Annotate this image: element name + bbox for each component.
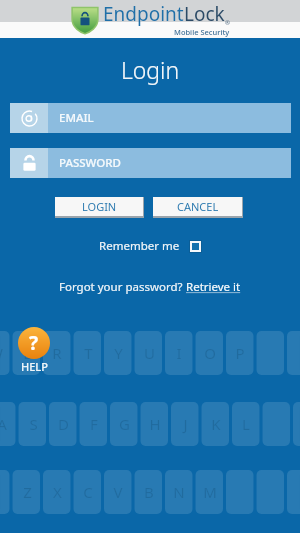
staticText: K	[211, 414, 221, 434]
staticText: X	[53, 482, 62, 502]
button[interactable]: Retrieve it	[186, 279, 241, 295]
staticText: Retrieve it	[186, 279, 241, 295]
staticText: V	[113, 482, 123, 502]
staticText: D	[58, 414, 69, 434]
staticText: R	[52, 343, 62, 363]
staticText: LOGIN	[82, 199, 117, 214]
staticText: Login	[0, 54, 300, 85]
button[interactable]: Help	[16, 325, 52, 376]
staticText: G	[119, 414, 130, 434]
staticText: T	[84, 343, 93, 363]
staticText: O	[204, 343, 216, 363]
staticText: L	[242, 414, 250, 434]
staticText: H	[149, 414, 161, 434]
staticText: I	[176, 343, 182, 363]
staticText: W	[0, 343, 3, 363]
button[interactable]: PASSWORD	[10, 148, 291, 178]
staticText: P	[235, 343, 245, 363]
staticText: F	[90, 414, 98, 434]
staticText: S	[29, 414, 38, 434]
button[interactable]: LOGIN	[55, 197, 143, 216]
staticText: Mobile Security	[174, 27, 230, 37]
staticText: PASSWORD	[59, 155, 122, 171]
button[interactable]: CANCEL	[153, 197, 242, 216]
staticText: E	[23, 343, 32, 363]
staticText: Z	[23, 482, 32, 502]
staticText: Y	[114, 343, 123, 363]
staticText: Lock	[184, 1, 225, 27]
staticText: Remember me	[99, 238, 180, 254]
staticText: M	[203, 482, 217, 502]
staticText: J	[183, 414, 188, 434]
staticText: CANCEL	[177, 199, 219, 214]
staticText: U	[144, 343, 155, 363]
staticText: C	[83, 482, 93, 502]
staticText: ®	[225, 19, 230, 27]
staticText: Endpoint	[103, 1, 184, 27]
staticText: HELP	[21, 359, 48, 374]
button[interactable]: EMAIL	[10, 103, 291, 133]
staticText: N	[173, 482, 185, 502]
staticText: EMAIL	[59, 110, 94, 126]
staticText: A	[0, 414, 7, 434]
staticText: B	[144, 482, 154, 502]
staticText: Forgot your password?	[59, 279, 186, 295]
staticText: ?	[29, 330, 39, 356]
button[interactable]: Remember me	[95, 235, 206, 257]
